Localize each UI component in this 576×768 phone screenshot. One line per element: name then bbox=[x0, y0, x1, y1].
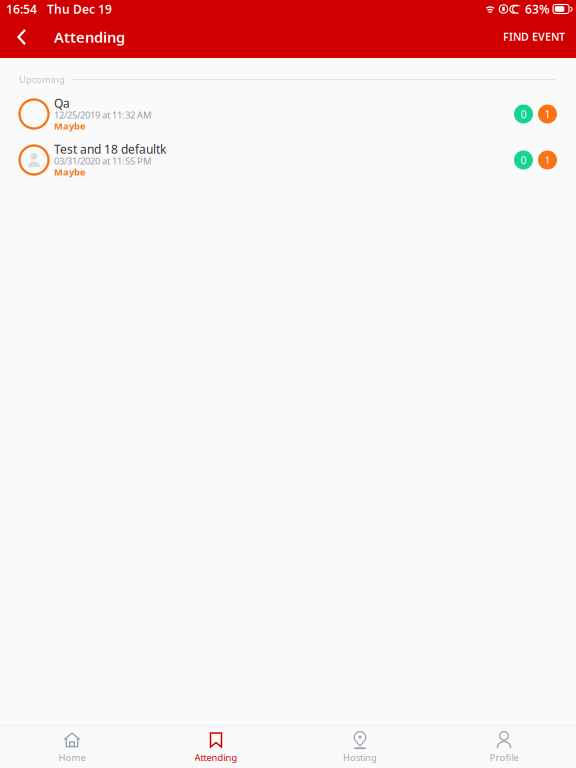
staticText: Attending bbox=[194, 751, 237, 764]
button[interactable]: FIND EVENT bbox=[492, 18, 576, 58]
button[interactable]: Hosting bbox=[288, 724, 432, 768]
staticText: 1 bbox=[544, 107, 550, 121]
staticText: Profile bbox=[489, 751, 518, 764]
staticText: FIND EVENT bbox=[503, 29, 565, 44]
staticText: 63% bbox=[525, 1, 550, 17]
button[interactable]: Attending bbox=[144, 724, 288, 768]
staticText: Hosting bbox=[343, 751, 377, 764]
staticText: 16:54 bbox=[6, 1, 37, 17]
staticText: Home bbox=[58, 751, 85, 764]
staticText: 1 bbox=[544, 153, 550, 167]
staticText: Upcoming bbox=[19, 73, 65, 86]
button[interactable]: Profile bbox=[432, 724, 576, 768]
button[interactable]: Qa bbox=[0, 91, 576, 137]
staticText: Maybe bbox=[54, 120, 86, 132]
staticText: 12/25/2019 at 11:32 AM bbox=[54, 109, 151, 121]
staticText: Qa bbox=[54, 95, 70, 111]
staticText: Test and 18 defaultk bbox=[54, 141, 166, 157]
button[interactable]: Back bbox=[6, 18, 38, 58]
staticText: 0 bbox=[520, 107, 526, 121]
staticText: Thu Dec 19 bbox=[47, 1, 112, 17]
staticText: Attending bbox=[54, 27, 125, 47]
button[interactable]: Test and 18 defaultk bbox=[0, 137, 576, 183]
staticText: 0 bbox=[520, 153, 526, 167]
staticText: Maybe bbox=[54, 166, 86, 178]
button[interactable]: Home bbox=[0, 724, 144, 768]
staticText: 03/31/2020 at 11:55 PM bbox=[54, 155, 151, 167]
